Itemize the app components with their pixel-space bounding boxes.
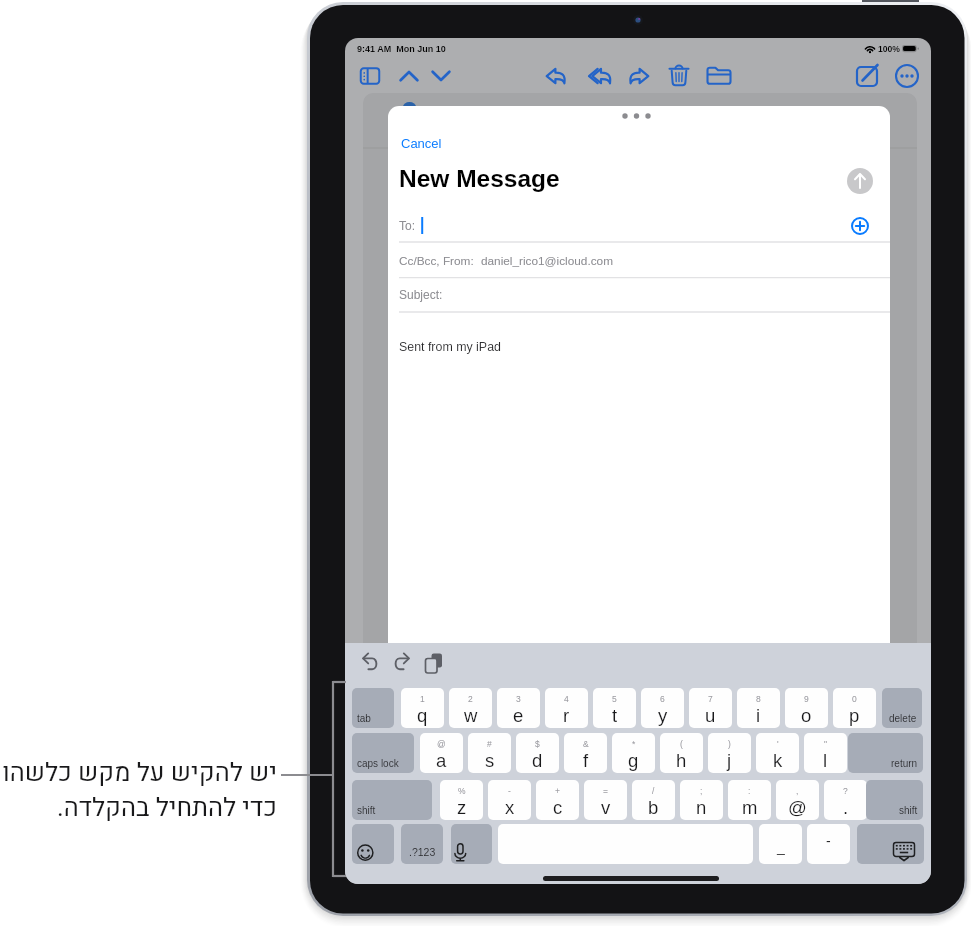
staticText: 1 — [420, 694, 425, 703]
staticText: New Message — [399, 165, 560, 192]
button[interactable]: 0 — [833, 688, 876, 728]
staticText: y — [658, 705, 668, 726]
button[interactable]: Cancel — [401, 136, 442, 151]
staticText: / — [652, 786, 655, 795]
button[interactable]: Next message — [425, 62, 457, 90]
button[interactable]: 2 — [449, 688, 492, 728]
button[interactable]: Redo — [388, 649, 416, 677]
button[interactable]: " — [804, 733, 847, 773]
button[interactable]: Send — [847, 168, 873, 194]
staticText: daniel_rico1@icloud.com — [481, 254, 613, 267]
button[interactable]: New message — [851, 61, 883, 91]
button[interactable]: - — [488, 780, 531, 820]
button[interactable]: & — [564, 733, 607, 773]
button[interactable]: .?123 — [401, 824, 443, 864]
button[interactable]: delete — [882, 688, 922, 728]
staticText: % — [458, 786, 466, 795]
button[interactable]: _ — [759, 824, 802, 864]
button[interactable]: 5 — [593, 688, 636, 728]
staticText: .?123 — [409, 846, 436, 858]
staticText: b — [648, 797, 659, 818]
staticText: : — [748, 786, 751, 795]
button[interactable]: shift — [866, 780, 923, 820]
button[interactable]: 3 — [497, 688, 540, 728]
button[interactable]: mic — [451, 824, 492, 864]
staticText: Cc/Bcc, From: — [399, 254, 481, 267]
button[interactable]: shift — [352, 780, 432, 820]
staticText: 0 — [852, 694, 857, 703]
button[interactable]: ( — [660, 733, 703, 773]
staticText: ? — [843, 786, 848, 795]
staticText: m — [742, 797, 758, 818]
button[interactable]: - — [807, 824, 850, 864]
button[interactable]: caps lock — [352, 733, 414, 773]
staticText: 2 — [468, 694, 473, 703]
button[interactable]: # — [468, 733, 511, 773]
button[interactable]: More — [891, 61, 923, 91]
staticText: ( — [680, 739, 683, 748]
button[interactable]: tab — [352, 688, 394, 728]
button[interactable]: kb — [857, 824, 924, 864]
button[interactable]: : — [728, 780, 771, 820]
button[interactable]: Forward — [623, 61, 657, 91]
staticText: o — [801, 705, 812, 726]
button[interactable]: 6 — [641, 688, 684, 728]
button[interactable]: return — [848, 733, 923, 773]
staticText: 8 — [756, 694, 761, 703]
button[interactable]: 9 — [785, 688, 828, 728]
button[interactable]: 1 — [401, 688, 444, 728]
staticText: 7 — [708, 694, 713, 703]
staticText: w — [464, 705, 478, 726]
button[interactable]: $ — [516, 733, 559, 773]
button[interactable]: Show sidebar — [353, 61, 387, 91]
staticText: _ — [777, 839, 785, 855]
button[interactable]: 7 — [689, 688, 732, 728]
staticText: 9:41 AM Mon Jun 10 — [357, 44, 446, 54]
button[interactable]: ) — [708, 733, 751, 773]
button[interactable]: emoji — [352, 824, 394, 864]
button[interactable]: Previous message — [393, 62, 425, 90]
button[interactable]: * — [612, 733, 655, 773]
button[interactable]: 4 — [545, 688, 588, 728]
staticText: q — [417, 705, 428, 726]
staticText: h — [676, 750, 687, 771]
button[interactable]: ' — [756, 733, 799, 773]
button[interactable]: Paste — [420, 649, 448, 677]
staticText: = — [603, 786, 608, 795]
button[interactable]: , — [776, 780, 819, 820]
button[interactable]: ? — [824, 780, 867, 820]
staticText: ' — [777, 739, 779, 748]
staticText: k — [773, 750, 783, 771]
button[interactable]: @ — [420, 733, 463, 773]
staticText: 6 — [660, 694, 665, 703]
button[interactable]: Undo — [356, 649, 384, 677]
staticText: 5 — [612, 694, 617, 703]
button[interactable]: Reply — [538, 61, 572, 91]
button[interactable]: Move to folder — [703, 61, 735, 91]
button[interactable]: ; — [680, 780, 723, 820]
staticText: t — [612, 705, 618, 726]
staticText: To: — [399, 219, 416, 232]
staticText: return — [891, 758, 918, 769]
staticText: delete — [889, 713, 917, 724]
staticText: . — [843, 797, 849, 818]
button[interactable]: Delete — [664, 61, 694, 91]
staticText: Subject: — [399, 288, 443, 301]
staticText: j — [727, 750, 732, 771]
button[interactable]: 8 — [737, 688, 780, 728]
button[interactable]: Add contact — [849, 215, 871, 237]
staticText: ; — [700, 786, 703, 795]
staticText: 4 — [564, 694, 569, 703]
staticText: r — [563, 705, 570, 726]
button[interactable]: % — [440, 780, 483, 820]
staticText: l — [823, 750, 828, 771]
button[interactable]: = — [584, 780, 627, 820]
button[interactable]: Reply all — [579, 61, 617, 91]
button[interactable]: + — [536, 780, 579, 820]
staticText: caps lock — [357, 758, 399, 769]
button[interactable]: / — [632, 780, 675, 820]
staticText: u — [705, 705, 716, 726]
staticText: @ — [788, 797, 807, 818]
staticText: v — [601, 797, 611, 818]
